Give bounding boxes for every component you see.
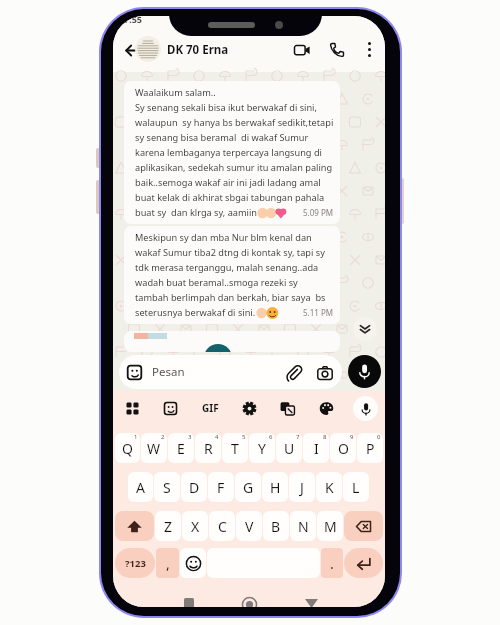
staticText: W [147,439,161,458]
staticText: N [298,517,309,536]
button[interactable]: Settings [238,397,260,419]
button[interactable]: Keyboard layouts [121,397,143,419]
staticText: H [270,478,281,497]
staticText: T [231,439,239,458]
staticText: Sy senang sekali bisa ikut berwakaf di s… [135,101,317,114]
button[interactable]: Translate [276,397,298,419]
button[interactable]: X [182,511,208,541]
button[interactable]: Photo message [124,331,340,352]
button[interactable]: F [208,472,234,502]
staticText: 9 [350,433,354,441]
button[interactable]: Profile photo [135,36,161,62]
staticText: 0 [377,433,381,441]
button[interactable]: Meskipun sy dan mba Nur blm kenal dan [124,226,340,324]
button[interactable]: More options [356,36,382,62]
button[interactable]: N [290,511,316,541]
staticText: wakaf Sumur tiba2 dtng di kontak sy, tap… [135,246,325,259]
button[interactable]: Voice call [323,36,351,64]
staticText: tambah berlimpah dan berkah, biar saya b… [135,291,326,304]
staticText: buat sy dan klrga sy, aamiin [135,206,257,219]
staticText: L [352,478,360,497]
staticText: 5 [242,433,246,441]
staticText: 2 [161,433,165,441]
button[interactable]: , [156,548,179,578]
button[interactable]: ?123 [115,548,155,578]
button[interactable]: . [321,548,343,578]
button[interactable]: T [222,433,248,463]
button[interactable]: K [316,472,342,502]
staticText: E [177,439,185,458]
button[interactable]: J [289,472,315,502]
button[interactable]: Shift [115,511,154,541]
button[interactable]: Enter [344,548,383,578]
button[interactable]: Emoji [119,355,342,389]
staticText: 7.55 [124,16,142,25]
staticText: 7 [296,433,300,441]
staticText: G [243,478,254,497]
staticText: F [217,478,225,497]
button[interactable]: Waalaikum salam.. [124,81,340,224]
button[interactable]: Home [235,589,264,607]
button[interactable]: D [181,472,207,502]
staticText: I [314,439,319,458]
button[interactable]: U [276,433,302,463]
staticText: P [366,439,375,458]
button[interactable]: Voice typing [353,396,378,421]
button[interactable]: P [357,433,383,463]
button[interactable]: Record voice message [348,355,381,388]
button[interactable]: Attach [283,362,304,383]
staticText: 3 [188,433,192,441]
button[interactable]: S [154,472,180,502]
staticText: Waalaikum salam.. [135,86,216,99]
staticText: 4 [215,433,219,441]
staticText: tdk merasa terganggu, malah senang..ada [135,261,319,274]
staticText: S [163,478,171,497]
button[interactable]: GIF [199,397,221,419]
button[interactable]: A [128,472,153,502]
staticText: baik..semoga wakaf air ini jadi ladang a… [135,176,321,189]
button[interactable]: Video call [288,36,316,64]
button[interactable]: Theme [315,397,337,419]
staticText: X [191,517,200,536]
button[interactable]: Scroll to bottom [353,317,377,341]
button[interactable]: B [263,511,289,541]
button[interactable]: Q [115,433,140,463]
staticText: J [300,478,304,497]
staticText: A [136,478,145,497]
staticText: Pesan [152,364,185,380]
staticText: O [338,439,349,458]
staticText: aplikasikan, sedekah sumur itu amalan pa… [135,161,333,174]
button[interactable]: M [317,511,343,541]
button[interactable]: I [303,433,329,463]
button[interactable]: W [141,433,167,463]
button[interactable]: Emoji [180,548,206,578]
staticText: GIF [202,401,219,415]
button[interactable]: V [236,511,262,541]
button[interactable]: Emoji [124,362,145,383]
button[interactable]: C [209,511,235,541]
button[interactable]: E [168,433,194,463]
staticText: . [330,554,334,573]
button[interactable]: Recent apps [174,589,203,607]
staticText: 6 [269,433,273,441]
staticText: karena lembaganya terpercaya langsung di [135,146,322,159]
button[interactable]: O [330,433,356,463]
button[interactable]: Y [249,433,275,463]
button[interactable]: Back [118,36,146,64]
button[interactable]: Backspace [344,511,383,541]
button[interactable]: H [262,472,288,502]
staticText: buat kelak di akhirat sbgai tabungan pah… [135,191,325,204]
button[interactable]: Back [297,589,326,607]
staticText: 5.09 PM [303,207,334,218]
button[interactable]: Stickers [159,397,181,419]
button[interactable]: G [235,472,261,502]
staticText: Meskipun sy dan mba Nur blm kenal dan [135,231,312,244]
staticText: seterusnya berwakaf di sini. [135,306,256,319]
button[interactable]: L [343,472,369,502]
staticText: K [325,478,334,497]
button[interactable]: Camera [314,362,335,383]
staticText: U [284,439,295,458]
button[interactable]: R [195,433,221,463]
button[interactable]: Z [155,511,181,541]
